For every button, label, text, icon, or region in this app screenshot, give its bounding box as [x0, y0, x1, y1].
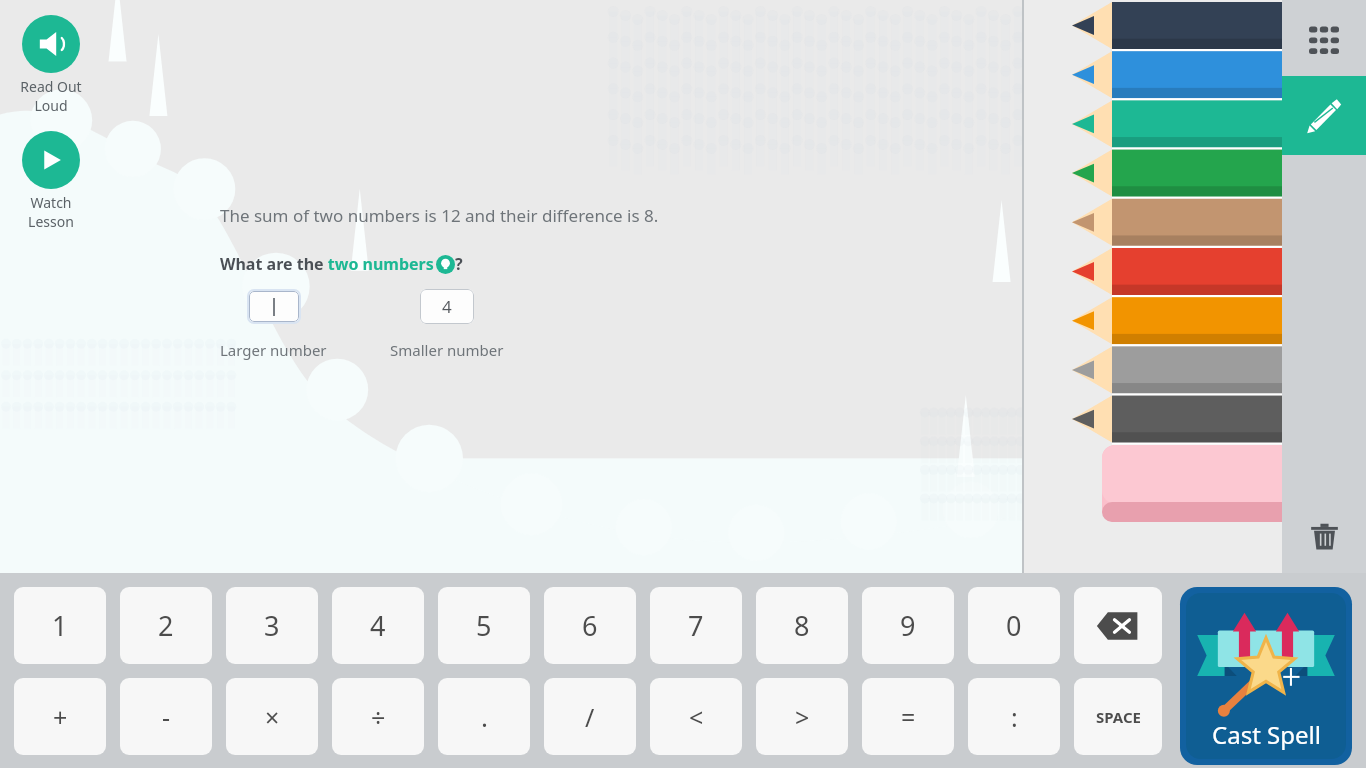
- button[interactable]: Pencil tool: [1282, 76, 1366, 155]
- button[interactable]: 1: [14, 587, 106, 664]
- staticText: The sum of two numbers is 12 and their d…: [220, 204, 659, 227]
- button[interactable]: >: [756, 678, 848, 755]
- staticText: 2: [158, 607, 174, 644]
- button[interactable]: -: [120, 678, 212, 755]
- button[interactable]: Pencil colour 2: [1024, 49, 1282, 98]
- button[interactable]: 6: [544, 587, 636, 664]
- button[interactable]: Pencil colour 5: [1024, 196, 1282, 245]
- button[interactable]: Pencil colour 1: [1024, 0, 1282, 49]
- button[interactable]: ÷: [332, 678, 424, 755]
- staticText: 4: [370, 607, 386, 644]
- button[interactable]: 9: [862, 587, 954, 664]
- staticText: 8: [794, 607, 810, 644]
- staticText: 5: [476, 607, 492, 644]
- staticText: 6: [582, 607, 598, 644]
- button[interactable]: Pencil colour 6: [1024, 245, 1282, 294]
- button[interactable]: Show keypad: [1282, 0, 1366, 76]
- button[interactable]: Watch Lesson: [13, 131, 89, 231]
- button[interactable]: Eraser: [1024, 444, 1282, 522]
- button[interactable]: :: [968, 678, 1060, 755]
- button[interactable]: 8: [756, 587, 848, 664]
- staticText: ÷: [371, 700, 386, 734]
- button[interactable]: Clear canvas: [1282, 499, 1366, 573]
- button[interactable]: Pencil colour 3: [1024, 98, 1282, 147]
- staticText: 9: [900, 607, 916, 644]
- staticText: +: [53, 700, 68, 734]
- staticText: :: [1011, 700, 1018, 734]
- button[interactable]: SPACE: [1074, 678, 1162, 755]
- staticText: Read Out Loud: [20, 77, 82, 115]
- button[interactable]: ×: [226, 678, 318, 755]
- button[interactable]: Pencil colour 7: [1024, 294, 1282, 343]
- staticText: 7: [688, 607, 704, 644]
- staticText: 0: [1006, 607, 1022, 644]
- staticText: ×: [265, 700, 280, 734]
- button[interactable]: .: [438, 678, 530, 755]
- button[interactable]: Pencil colour 9: [1024, 392, 1282, 441]
- button[interactable]: Cast Spell: [1180, 587, 1352, 765]
- button[interactable]: [249, 291, 299, 322]
- staticText: -: [162, 700, 171, 734]
- button[interactable]: Pencil colour 4: [1024, 147, 1282, 196]
- staticText: .: [481, 699, 488, 734]
- button[interactable]: Read Out Loud: [13, 15, 89, 115]
- staticText: What are the two numbers: [220, 253, 434, 275]
- staticText: /: [585, 700, 595, 734]
- staticText: 4: [442, 295, 452, 318]
- staticText: ?: [455, 253, 463, 275]
- button[interactable]: 2: [120, 587, 212, 664]
- staticText: 3: [264, 607, 280, 644]
- staticText: Larger number: [220, 340, 327, 360]
- button[interactable]: 5: [438, 587, 530, 664]
- button[interactable]: Hint: [436, 255, 455, 274]
- staticText: =: [901, 700, 916, 734]
- staticText: 1: [52, 607, 68, 644]
- staticText: Smaller number: [390, 340, 504, 360]
- button[interactable]: 0: [968, 587, 1060, 664]
- button[interactable]: +: [14, 678, 106, 755]
- button[interactable]: 4: [332, 587, 424, 664]
- button[interactable]: 7: [650, 587, 742, 664]
- button[interactable]: 3: [226, 587, 318, 664]
- staticText: <: [689, 700, 704, 734]
- staticText: >: [795, 700, 810, 734]
- button[interactable]: Backspace: [1074, 587, 1162, 664]
- staticText: Watch Lesson: [28, 193, 74, 231]
- button[interactable]: /: [544, 678, 636, 755]
- button[interactable]: 4: [420, 289, 474, 324]
- button[interactable]: Pencil colour 8: [1024, 343, 1282, 392]
- button[interactable]: =: [862, 678, 954, 755]
- button[interactable]: <: [650, 678, 742, 755]
- staticText: Cast Spell: [1212, 718, 1321, 751]
- staticText: SPACE: [1096, 707, 1141, 727]
